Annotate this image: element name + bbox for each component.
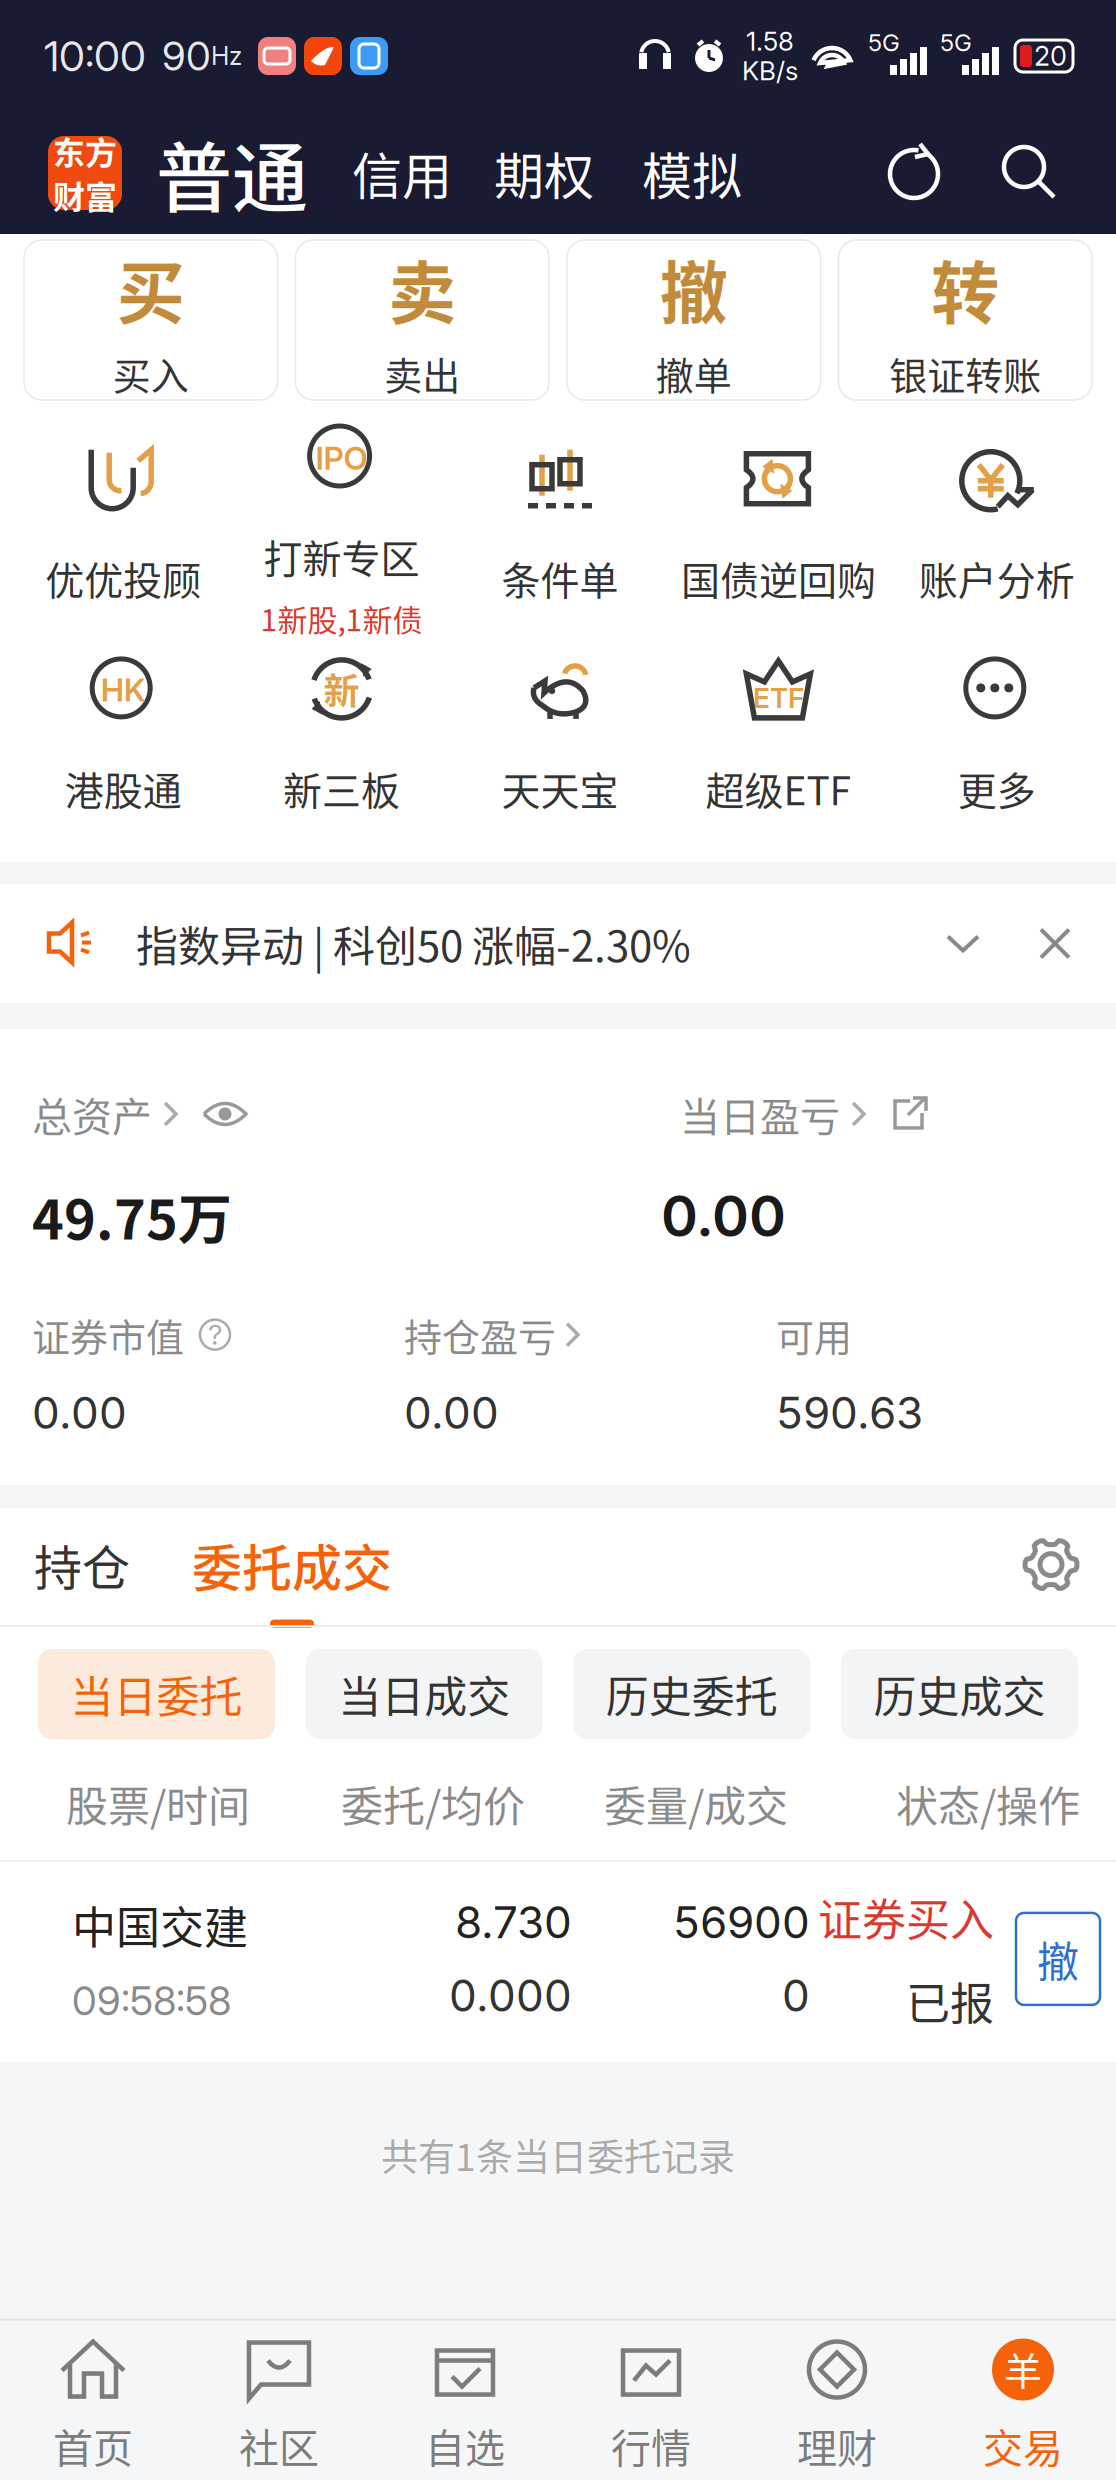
staticText: 当日成交 [338, 1663, 510, 1725]
staticText: 当日盈亏 [680, 1085, 840, 1143]
button[interactable]: 普通 [156, 118, 308, 228]
button[interactable]: 当日盈亏 [680, 1085, 930, 1143]
staticText: 当日委托 [70, 1663, 242, 1725]
staticText: 5G [940, 28, 972, 57]
staticText: 优优投顾 [45, 550, 201, 606]
button[interactable]: 行情 [558, 2338, 744, 2474]
staticText: 证券买入 [818, 1885, 994, 1949]
button[interactable]: 转 [838, 240, 1092, 400]
staticText: 90 [162, 32, 211, 80]
staticText: 委托/均价 [341, 1773, 525, 1834]
staticText: 账户分析 [919, 550, 1075, 606]
button[interactable]: 优优投顾 [14, 444, 232, 618]
button[interactable]: 期权 [494, 137, 594, 209]
staticText: 历史成交 [873, 1663, 1045, 1725]
staticText: 信用 [352, 137, 452, 209]
staticText: 新三板 [283, 760, 400, 816]
staticText: 委托成交 [192, 1528, 392, 1601]
staticText: 持仓 [34, 1530, 130, 1599]
button[interactable]: 模拟 [642, 137, 742, 209]
button[interactable]: 历史成交 [841, 1649, 1078, 1739]
button[interactable]: 关闭 Close [1038, 926, 1072, 960]
staticText: 买 [117, 239, 185, 338]
staticText: 银证转账 [889, 346, 1041, 401]
button[interactable]: 搜索 Search [998, 142, 1060, 204]
button[interactable]: IPO [232, 422, 451, 640]
staticText: 状态/操作 [896, 1773, 1080, 1834]
staticText: 0.00 [404, 1386, 499, 1439]
button[interactable]: 账户分析 [888, 444, 1106, 618]
staticText: 历史委托 [606, 1663, 778, 1725]
staticText: 撤 [660, 239, 728, 338]
staticText: 0 [782, 1969, 810, 2022]
staticText: 更多 [958, 760, 1036, 816]
staticText: 共有1条当日委托记录 [381, 2128, 735, 2182]
staticText: 持仓盈亏 [404, 1307, 556, 1362]
button[interactable]: 买 [24, 240, 277, 400]
staticText: Hz [211, 41, 242, 71]
staticText: 行情 [611, 2416, 691, 2474]
staticText: 超级ETF [705, 760, 851, 816]
button[interactable]: 国债逆回购 [669, 444, 888, 618]
staticText: 已报 [906, 1969, 994, 2033]
button[interactable]: ETF [669, 654, 888, 828]
button[interactable]: 撤 [567, 240, 820, 400]
staticText: 新 [324, 663, 360, 715]
staticText: 模拟 [642, 137, 742, 209]
button[interactable]: 当日委托 [38, 1649, 275, 1739]
staticText: KB/s [742, 55, 798, 86]
staticText: 1新股,1新债 [261, 596, 423, 640]
button[interactable]: 历史委托 [573, 1649, 810, 1739]
staticText: 自选 [425, 2416, 505, 2474]
button[interactable]: 东方 [48, 136, 122, 210]
button[interactable]: 刷新 Refresh [884, 142, 946, 204]
button[interactable]: 展开 Expand [944, 926, 982, 960]
button[interactable]: 信用 [352, 137, 452, 209]
button[interactable]: 设置 Settings [1022, 1534, 1080, 1596]
button[interactable]: 委托成交 [192, 1534, 392, 1628]
button[interactable]: 新 [232, 654, 451, 828]
button[interactable]: 持仓 [34, 1534, 130, 1596]
staticText: 5G [868, 28, 900, 57]
button[interactable]: 总资产 [32, 1085, 248, 1143]
staticText: 普通 [156, 118, 308, 228]
staticText: 10:00 [44, 31, 146, 81]
button[interactable]: 首页 [0, 2338, 186, 2474]
button[interactable]: 自选 [372, 2338, 558, 2474]
button[interactable]: 理财 [744, 2338, 930, 2474]
staticText: 撤单 [656, 346, 732, 401]
staticText: 证券市值 [32, 1307, 184, 1362]
staticText: 总资产 [32, 1085, 152, 1143]
staticText: 港股通 [65, 760, 182, 816]
staticText: 交易 [983, 2416, 1063, 2474]
button[interactable]: 当日成交 [306, 1649, 543, 1739]
staticText: HK [101, 671, 146, 709]
staticText: ? [208, 1318, 222, 1352]
staticText: 期权 [494, 137, 594, 209]
staticText: 社区 [239, 2416, 319, 2474]
button[interactable]: 社区 [186, 2338, 372, 2474]
staticText: 0.00 [32, 1386, 127, 1439]
button[interactable]: 卖 [295, 240, 549, 400]
staticText: 1.58 [746, 25, 794, 57]
button[interactable]: 羊 [930, 2338, 1116, 2474]
staticText: 49.75万 [32, 1177, 232, 1255]
staticText: 卖 [388, 239, 456, 338]
button[interactable]: 更多 [888, 654, 1106, 828]
staticText: 羊 [1004, 2341, 1042, 2396]
button[interactable]: 天天宝 [451, 654, 669, 828]
staticText: 买入 [113, 346, 189, 401]
button[interactable]: 条件单 [451, 444, 669, 618]
staticText: 首页 [53, 2416, 133, 2474]
staticText: 8.730 [455, 1896, 572, 1949]
button[interactable]: HK [14, 654, 232, 828]
button[interactable]: 撤 [1016, 1913, 1100, 2005]
staticText: IPO [316, 439, 368, 477]
staticText: 中国交建 [72, 1893, 248, 1957]
staticText: 09:58:58 [72, 1977, 231, 2025]
staticText: 590.63 [776, 1386, 923, 1439]
staticText: 20 [1034, 40, 1067, 72]
staticText: 指数异动 | 科创50 涨幅-2.30% [136, 913, 691, 974]
staticText: 条件单 [501, 550, 618, 606]
staticText: 转 [931, 239, 999, 338]
